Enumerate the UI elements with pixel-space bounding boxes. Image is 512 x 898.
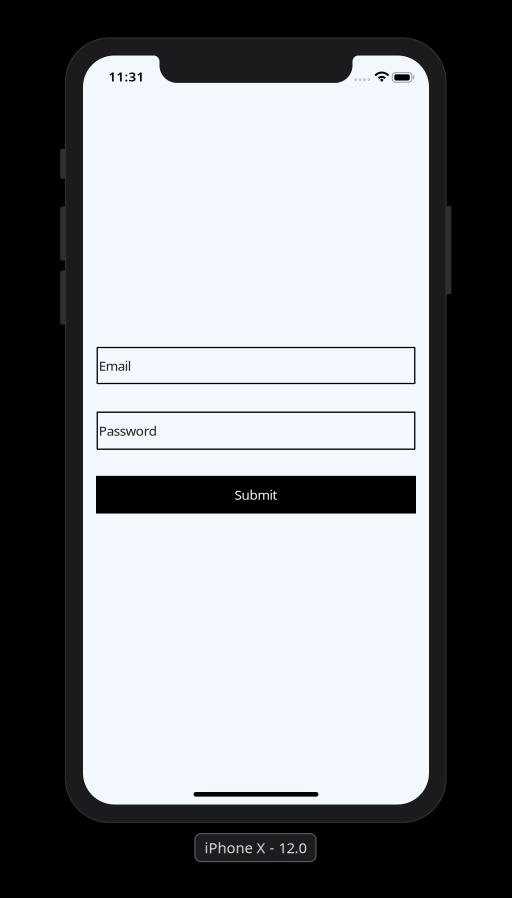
staticText: Email (99, 357, 131, 374)
staticText: 11:31 (108, 67, 144, 85)
staticText: Password (99, 422, 157, 439)
button[interactable]: Submit (96, 476, 416, 513)
staticText: iPhone X - 12.0 (204, 838, 306, 857)
button[interactable]: Password (97, 412, 415, 449)
button[interactable]: Email (97, 347, 415, 383)
staticText: Submit (234, 486, 277, 503)
button[interactable]: iPhone X - 12.0 (195, 834, 316, 862)
